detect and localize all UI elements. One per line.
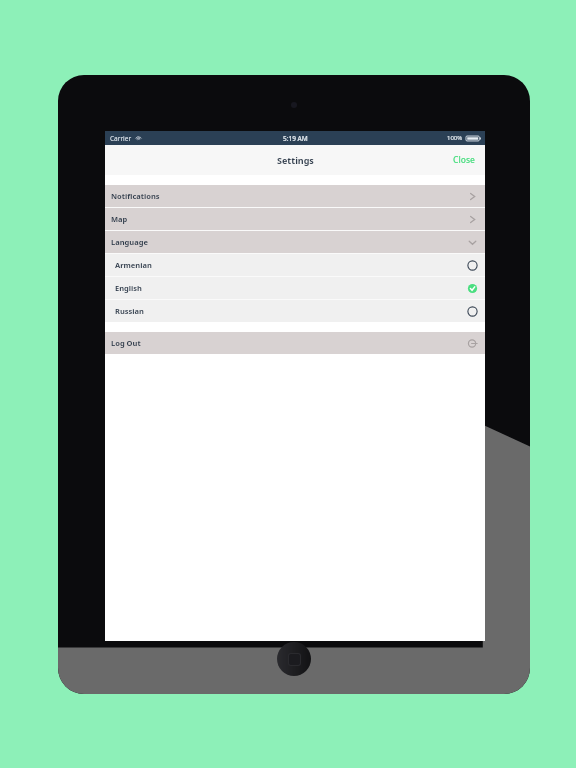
staticText: 5:19 AM — [283, 134, 308, 143]
staticText: Notifications — [111, 191, 160, 201]
button[interactable]: Home — [277, 642, 311, 676]
staticText: Settings — [277, 154, 314, 166]
button[interactable]: Close — [417, 145, 485, 175]
staticText: Language — [111, 237, 148, 247]
staticText: Russian — [115, 306, 144, 316]
button[interactable]: Russian — [105, 300, 485, 322]
button[interactable]: Language — [105, 231, 485, 253]
button[interactable]: English — [105, 277, 485, 299]
staticText: Log Out — [111, 338, 141, 348]
staticText: Map — [111, 214, 128, 224]
button[interactable]: Notifications — [105, 185, 485, 207]
staticText: English — [115, 283, 142, 293]
staticText: 100% — [447, 134, 463, 142]
button[interactable]: Map — [105, 208, 485, 230]
staticText: Armenian — [115, 260, 152, 270]
button[interactable]: Log Out — [105, 332, 485, 354]
staticText: Carrier — [110, 134, 132, 143]
staticText: Close — [453, 154, 475, 166]
button[interactable]: Armenian — [105, 254, 485, 276]
